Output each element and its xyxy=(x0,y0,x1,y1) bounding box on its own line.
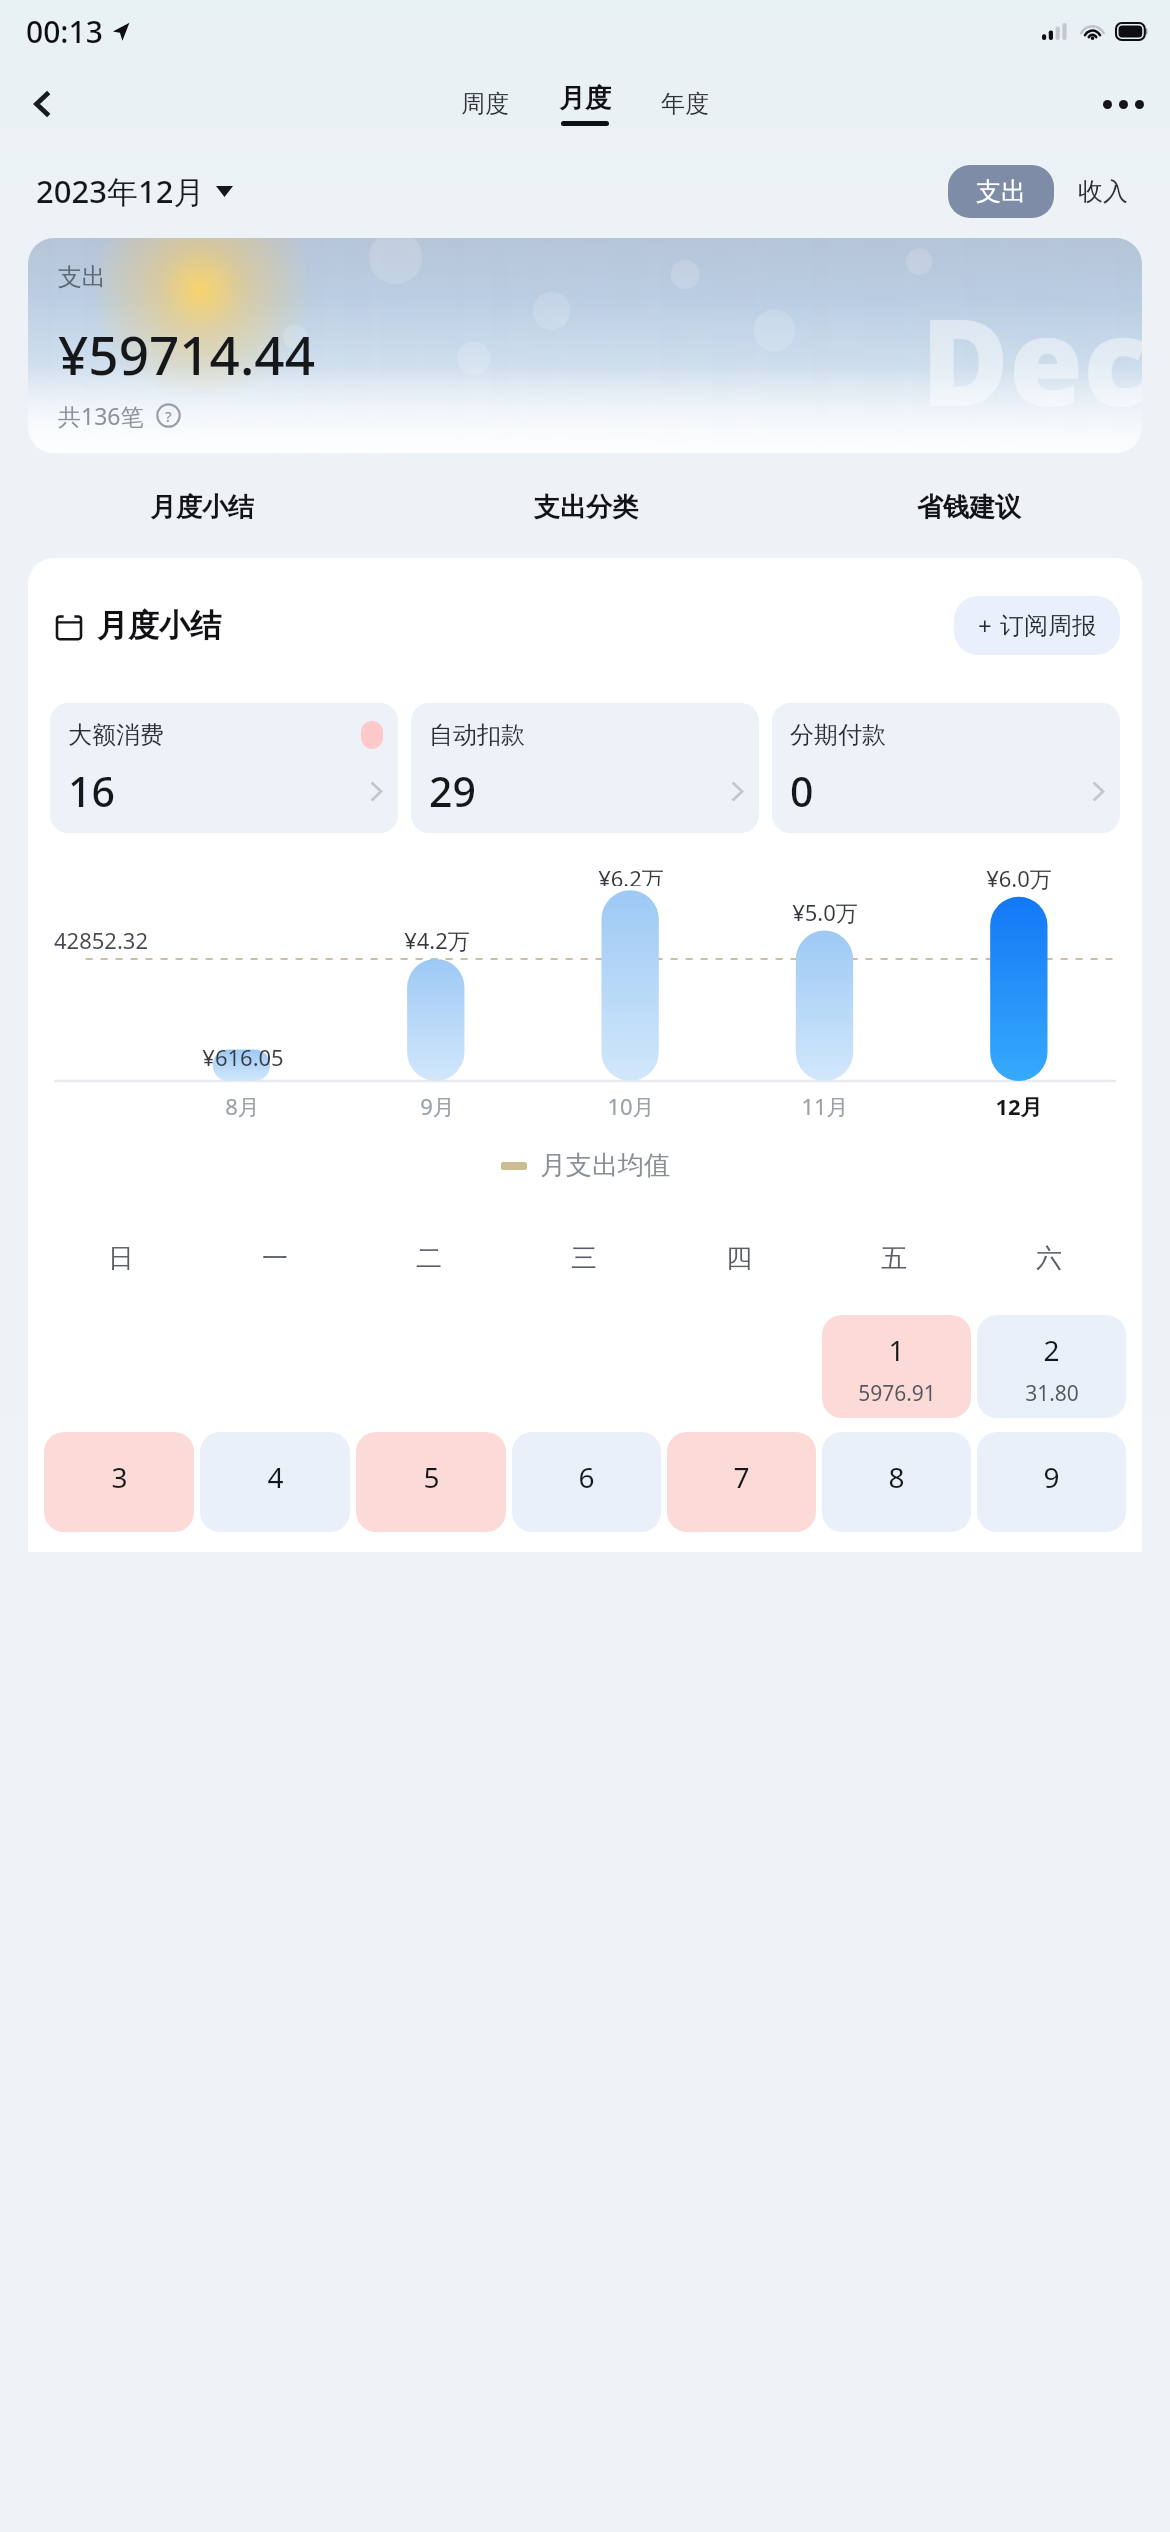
button[interactable]: 省钱建议 xyxy=(777,479,1160,536)
staticText: Dec xyxy=(921,278,1142,441)
staticText: 月度 xyxy=(559,82,611,115)
button[interactable]: More options xyxy=(1094,75,1152,133)
button[interactable]: Dec xyxy=(28,238,1142,453)
staticText: 支出 xyxy=(976,176,1026,207)
staticText: 周度 xyxy=(461,89,509,119)
button[interactable]: 7 xyxy=(667,1432,816,1532)
button[interactable]: 5 xyxy=(356,1432,506,1532)
staticText: 9月 xyxy=(420,1091,455,1121)
staticText: 5 xyxy=(423,1458,440,1496)
staticText: 3 xyxy=(111,1458,128,1496)
staticText: 一 xyxy=(262,1242,288,1275)
staticText: 日 xyxy=(108,1242,134,1275)
staticText: 1 xyxy=(888,1331,905,1369)
staticText: 大额消费 xyxy=(68,720,164,750)
staticText: 省钱建议 xyxy=(917,491,1021,524)
staticText: 支出分类 xyxy=(534,491,638,524)
staticText: ¥616.05 xyxy=(202,1042,284,1072)
button[interactable]: Help xyxy=(156,403,181,428)
button[interactable]: 支出 xyxy=(948,165,1054,218)
button[interactable]: 月度 xyxy=(539,78,631,130)
button[interactable]: 收入 xyxy=(1068,165,1138,218)
button[interactable]: 1 xyxy=(822,1315,971,1418)
staticText: 月支出均值 xyxy=(540,1149,670,1182)
staticText: 月度小结 xyxy=(150,491,254,524)
staticText: 10月 xyxy=(607,1091,655,1121)
button[interactable]: 周度 xyxy=(441,79,529,129)
staticText: 9 xyxy=(1043,1458,1060,1496)
button[interactable]: + xyxy=(954,596,1120,655)
staticText: 42852.32 xyxy=(54,925,148,955)
staticText: 月度小结 xyxy=(97,606,221,645)
button[interactable]: 分期付款 xyxy=(772,703,1120,833)
staticText: ¥59714.44 xyxy=(58,318,315,390)
staticText: ¥6.0万 xyxy=(986,863,1052,893)
staticText: 16 xyxy=(68,763,115,819)
staticText: 共136笔 xyxy=(58,400,144,431)
staticText: 六 xyxy=(1036,1242,1062,1275)
staticText: 11月 xyxy=(801,1091,849,1121)
staticText: ? xyxy=(165,406,172,426)
staticText: 自动扣款 xyxy=(429,720,525,750)
staticText: ¥6.2万 xyxy=(598,863,664,886)
staticText: ¥4.2万 xyxy=(404,925,470,955)
button[interactable]: 4 xyxy=(200,1432,350,1532)
staticText: 二 xyxy=(416,1242,442,1275)
staticText: 29 xyxy=(429,763,476,819)
button[interactable]: 2023年12月 xyxy=(36,164,233,218)
button[interactable]: 8 xyxy=(822,1432,971,1532)
staticText: 12月 xyxy=(995,1091,1043,1121)
staticText: 收入 xyxy=(1078,176,1128,207)
staticText: ¥5.0万 xyxy=(792,897,858,927)
button[interactable]: 6 xyxy=(512,1432,661,1532)
staticText: 年度 xyxy=(661,89,709,119)
staticText: 7 xyxy=(733,1458,750,1496)
staticText: 31.80 xyxy=(1025,1379,1079,1408)
staticText: 三 xyxy=(571,1242,597,1275)
staticText: 6 xyxy=(578,1458,595,1496)
button[interactable]: 年度 xyxy=(641,79,729,129)
staticText: 4 xyxy=(267,1458,284,1496)
staticText: 2023年12月 xyxy=(36,170,205,212)
button[interactable]: 支出分类 xyxy=(394,479,777,536)
staticText: 订阅周报 xyxy=(1000,611,1096,641)
staticText: 0 xyxy=(790,763,814,819)
button[interactable]: 自动扣款 xyxy=(411,703,759,833)
staticText: 2 xyxy=(1043,1331,1060,1369)
staticText: 四 xyxy=(726,1242,752,1275)
button[interactable]: 3 xyxy=(44,1432,194,1532)
button[interactable]: Back xyxy=(14,75,72,133)
staticText: 支出 xyxy=(58,262,106,292)
staticText: 8 xyxy=(888,1458,905,1496)
button[interactable]: 9 xyxy=(977,1432,1126,1532)
staticText: 00:13 xyxy=(26,11,103,52)
staticText: 五 xyxy=(881,1242,907,1275)
staticText: 分期付款 xyxy=(790,720,886,750)
staticText: 8月 xyxy=(225,1091,260,1121)
staticText: + xyxy=(978,609,992,642)
button[interactable]: 月度小结 xyxy=(10,479,394,536)
button[interactable]: 2 xyxy=(977,1315,1126,1418)
staticText: 5976.91 xyxy=(858,1379,936,1408)
button[interactable]: 大额消费 xyxy=(50,703,398,833)
